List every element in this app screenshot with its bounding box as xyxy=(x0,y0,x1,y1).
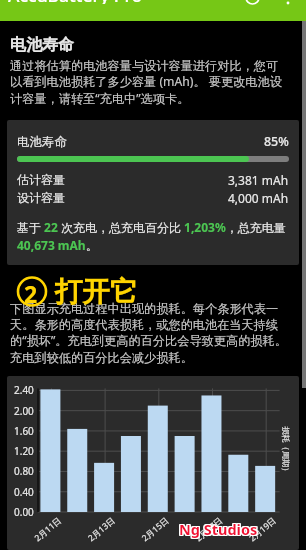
button[interactable]: AccuBattery Pro xyxy=(8,0,143,4)
staticText: 打开它 xyxy=(55,275,138,310)
staticText: 估计容量 xyxy=(17,172,65,187)
staticText: 下图显示充电过程中出现的损耗。每个条形代表一天。条形的高度代表损耗，或您的电池在… xyxy=(10,301,288,365)
staticText: 设计容量 xyxy=(17,190,65,205)
staticText: 基于 22 次充电，总充电百分比 1,203%，总充电量 40,673 mAh。 xyxy=(17,219,297,253)
staticText: 通过将估算的电池容量与设计容量进行对比，您可以看到电池损耗了多少容量 (mAh)… xyxy=(10,58,288,107)
button[interactable]: Battery alarm xyxy=(239,0,265,8)
staticText: 4,000 mAh xyxy=(228,190,289,206)
staticText: 85% xyxy=(264,133,289,150)
staticText: 2 xyxy=(24,278,38,309)
staticText: 电池寿命 xyxy=(17,134,67,150)
staticText: AccuBattery Pro xyxy=(8,0,143,4)
staticText: 电池寿命 xyxy=(10,35,74,55)
button[interactable]: More options xyxy=(275,0,301,8)
staticText: 3,381 mAh xyxy=(228,172,289,188)
